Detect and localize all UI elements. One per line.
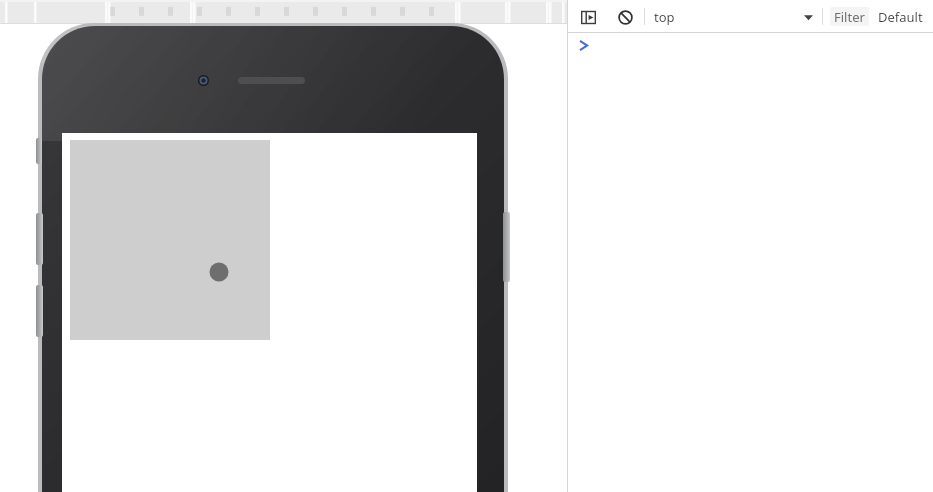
other: Console prompt: [579, 40, 588, 51]
button[interactable]: Device side button: [36, 213, 43, 265]
button[interactable]: Device side button: [36, 285, 43, 337]
button[interactable]: Filter: [830, 7, 869, 26]
staticText: Filter: [834, 8, 865, 26]
button[interactable]: Clear console: [612, 4, 638, 30]
button[interactable]: Show console sidebar: [575, 4, 601, 30]
button[interactable]: Device side button: [503, 212, 510, 282]
button[interactable]: Default levels: [878, 6, 933, 28]
button[interactable]: top: [654, 6, 816, 28]
button[interactable]: Device side button: [36, 138, 42, 164]
button[interactable]: [70, 140, 270, 340]
staticText: top: [654, 8, 675, 26]
staticText: Default levels: [878, 8, 933, 26]
button[interactable]: Console prompt: [568, 34, 933, 56]
